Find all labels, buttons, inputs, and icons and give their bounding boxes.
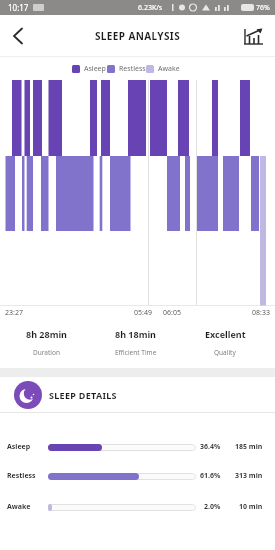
button[interactable]: Asleep bbox=[0, 436, 275, 458]
staticText: 76% bbox=[256, 3, 270, 13]
staticText: 8h 18min bbox=[115, 328, 156, 340]
button[interactable] bbox=[4, 20, 32, 52]
staticText: SLEEP DETAILS bbox=[49, 389, 117, 401]
button[interactable]: SLEEP DETAILS bbox=[0, 377, 275, 412]
staticText: SLEEP ANALYSIS bbox=[0, 29, 275, 43]
staticText: 23:27 bbox=[5, 308, 23, 318]
staticText: 10 min bbox=[239, 502, 263, 512]
staticText: 36.4% bbox=[200, 442, 221, 452]
staticText: 61.6% bbox=[200, 471, 221, 481]
staticText: Efficient Time bbox=[115, 348, 157, 357]
staticText: Asleep bbox=[84, 64, 106, 74]
staticText: Awake bbox=[158, 64, 180, 74]
button[interactable]: Restless bbox=[0, 465, 275, 487]
staticText: Restless bbox=[119, 64, 146, 74]
staticText: 2.0% bbox=[204, 502, 221, 512]
staticText: 05:49 bbox=[134, 308, 152, 318]
staticText: 185 min bbox=[235, 442, 263, 452]
staticText: Excellent bbox=[205, 328, 246, 340]
staticText: 6.23K/s bbox=[138, 3, 163, 13]
button[interactable]: Awake bbox=[0, 496, 275, 518]
staticText: Duration bbox=[33, 348, 60, 357]
staticText: 10:17 bbox=[8, 2, 29, 13]
staticText: 313 min bbox=[235, 471, 263, 481]
staticText: Restless bbox=[7, 471, 36, 481]
staticText: 08:33 bbox=[252, 308, 270, 318]
staticText: 8h 28min bbox=[26, 328, 67, 340]
button[interactable] bbox=[238, 20, 270, 52]
staticText: Asleep bbox=[7, 442, 31, 452]
staticText: Awake bbox=[7, 502, 31, 512]
staticText: Quality bbox=[214, 348, 236, 357]
staticText: 06:05 bbox=[163, 308, 181, 318]
